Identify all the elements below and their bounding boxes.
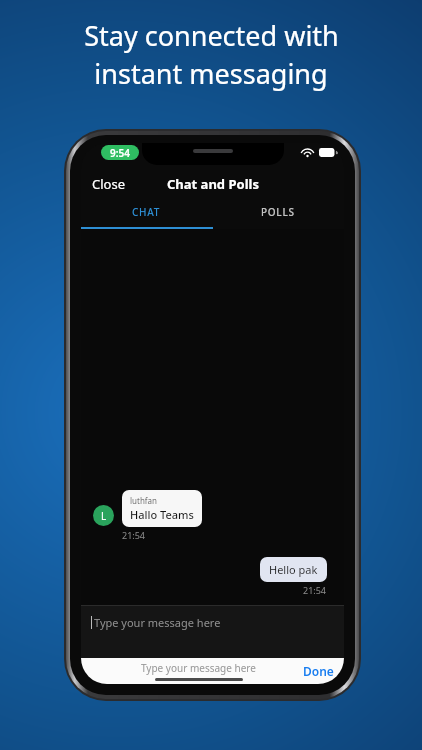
staticText: Stay connected with [84, 17, 339, 54]
button[interactable]: Hello pak [260, 557, 327, 582]
button[interactable]: POLLS [212, 194, 344, 229]
staticText: L [101, 509, 107, 523]
other: Wi-Fi [301, 147, 314, 157]
staticText: 21:54 [122, 529, 146, 541]
staticText: Done [303, 663, 334, 679]
button[interactable]: Type your message here [81, 606, 344, 658]
button[interactable]: Close [81, 173, 133, 194]
staticText: luthfan [130, 495, 158, 506]
button[interactable]: CHAT [81, 194, 212, 229]
other: Battery [319, 148, 337, 157]
staticText: CHAT [132, 205, 161, 219]
staticText: instant messaging [94, 55, 328, 92]
staticText: 21:54 [303, 584, 327, 596]
staticText: Close [92, 175, 125, 192]
button[interactable]: Done [293, 659, 344, 683]
staticText: Chat and Polls [167, 175, 259, 193]
staticText: Hallo Teams [130, 507, 194, 522]
staticText: 9:54 [110, 146, 130, 160]
staticText: Type your message here [94, 615, 221, 630]
staticText: Hello pak [269, 562, 318, 577]
button[interactable]: luthfan [122, 490, 202, 527]
staticText: Type your message here [141, 661, 256, 675]
staticText: POLLS [261, 205, 295, 219]
